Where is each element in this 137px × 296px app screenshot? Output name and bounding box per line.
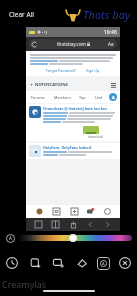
staticText: A xyxy=(9,235,12,241)
button[interactable]: Forums xyxy=(29,94,47,101)
staticText: Und xyxy=(95,95,103,100)
other: Reload xyxy=(32,42,37,47)
button[interactable]: Top xyxy=(77,94,88,101)
button[interactable]: Back xyxy=(86,220,95,229)
button[interactable]: Account xyxy=(103,207,112,216)
staticText: Thots bay xyxy=(83,7,131,22)
button[interactable]: Bookmarks xyxy=(51,220,60,229)
staticText: Chaturbate @ ihatetolj hate tan kes xyxy=(43,106,107,111)
button[interactable]: Alerts xyxy=(87,208,94,215)
staticText: + xyxy=(30,81,34,89)
staticText: Forgot Password? xyxy=(46,68,76,73)
button[interactable]: Tabs xyxy=(34,220,43,229)
button[interactable]: Home xyxy=(35,207,44,216)
staticText: Sign Up xyxy=(86,68,100,73)
staticText: Clear All xyxy=(9,10,34,19)
button[interactable]: Markup xyxy=(97,257,110,270)
button[interactable]: Add xyxy=(70,207,79,216)
button[interactable]: Account xyxy=(109,93,117,101)
staticText: A xyxy=(102,261,105,266)
staticText: Top xyxy=(79,95,86,100)
button[interactable]: Thots bay xyxy=(62,5,133,24)
button[interactable]: Forgot Password? xyxy=(44,68,78,73)
button[interactable]: Eraser xyxy=(74,255,90,271)
button[interactable]: Clear All xyxy=(6,8,37,21)
button[interactable]: Reload xyxy=(29,39,117,49)
staticText: 10:46 xyxy=(104,29,117,36)
staticText: Members xyxy=(54,95,71,100)
button[interactable]: Text size xyxy=(108,41,114,47)
button[interactable]: Add text xyxy=(27,255,43,271)
staticText: thotsbay.com xyxy=(57,41,86,47)
button[interactable]: Forward xyxy=(103,220,112,229)
button[interactable]: Und xyxy=(93,94,105,101)
button[interactable]: Undo xyxy=(4,255,20,271)
button[interactable]: Share xyxy=(69,220,78,229)
staticText: A xyxy=(112,95,115,100)
button[interactable]: Add shape xyxy=(50,255,66,271)
staticText: NOTIFICATIONS xyxy=(35,82,68,88)
button[interactable]: Inbox xyxy=(52,207,61,216)
button[interactable]: Menu xyxy=(110,82,116,88)
button[interactable]: Members xyxy=(52,94,73,101)
button[interactable]: OnlyFans OnlyFans leaked xyxy=(26,143,120,159)
button[interactable]: + xyxy=(30,81,68,89)
staticText: OnlyFans OnlyFans leaked xyxy=(43,145,91,150)
button[interactable] xyxy=(18,235,132,241)
staticText: download xyxy=(88,135,103,139)
button[interactable]: Close xyxy=(117,255,133,271)
button[interactable]: Sign Up xyxy=(84,68,102,73)
button[interactable]: Opacity xyxy=(5,233,15,243)
button[interactable]: Chaturbate @ ihatetolj hate tan kes xyxy=(26,104,120,141)
staticText: Forums xyxy=(31,95,45,100)
staticText: Aa xyxy=(108,41,114,47)
staticText: Creamylas xyxy=(2,278,47,290)
